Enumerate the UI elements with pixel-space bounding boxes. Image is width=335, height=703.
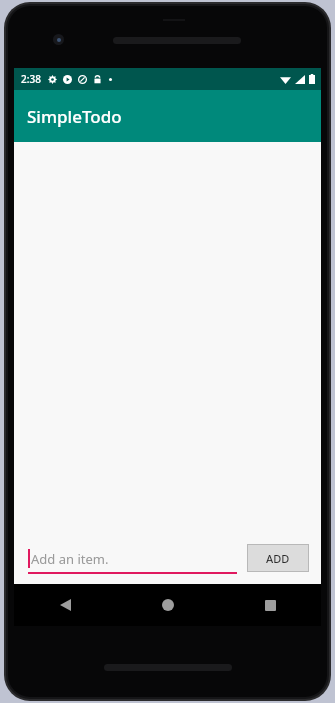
button[interactable]: SimpleTodo: [14, 90, 321, 142]
staticText: 2:38: [21, 72, 41, 86]
button[interactable]: Add an item.: [28, 542, 237, 574]
staticText: ADD: [266, 551, 290, 566]
staticText: SimpleTodo: [27, 105, 122, 128]
button[interactable]: Home: [117, 584, 219, 626]
button[interactable]: Back: [14, 584, 117, 626]
button[interactable]: ADD: [248, 545, 308, 571]
staticText: Add an item.: [31, 550, 109, 568]
button[interactable]: Recent apps: [219, 584, 321, 626]
